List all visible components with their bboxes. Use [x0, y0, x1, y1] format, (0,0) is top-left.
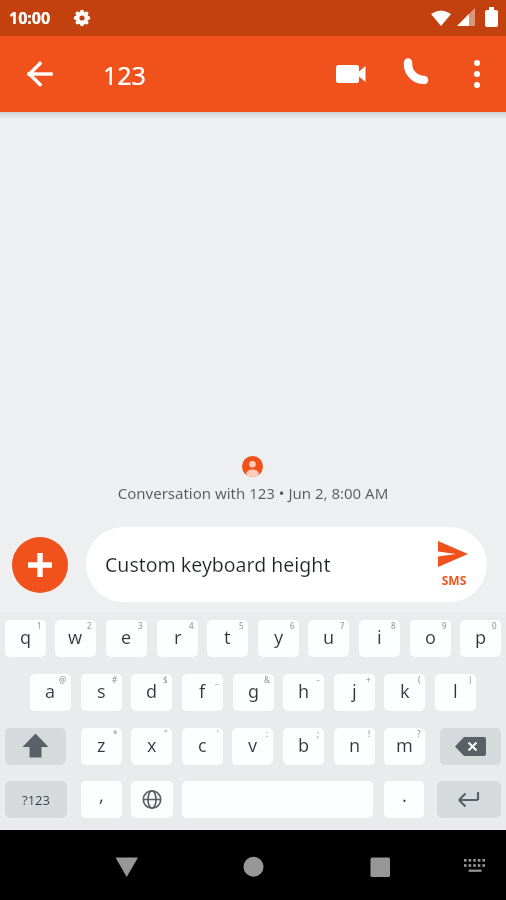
- button[interactable]: i: [359, 620, 400, 657]
- staticText: ): [469, 674, 472, 685]
- staticText: #: [112, 674, 118, 685]
- staticText: b: [298, 733, 310, 758]
- button[interactable]: w: [55, 620, 96, 657]
- button[interactable]: [5, 728, 66, 765]
- staticText: _: [215, 674, 219, 685]
- button[interactable]: [350, 835, 410, 895]
- staticText: h: [298, 679, 310, 704]
- staticText: f: [199, 679, 206, 704]
- staticText: *: [113, 728, 118, 739]
- staticText: k: [400, 679, 410, 704]
- button[interactable]: [455, 46, 505, 102]
- button[interactable]: p: [460, 620, 501, 657]
- button[interactable]: [437, 781, 501, 818]
- staticText: a: [45, 679, 56, 704]
- button[interactable]: ?123: [5, 781, 67, 818]
- button[interactable]: [96, 835, 156, 895]
- button[interactable]: d: [131, 674, 172, 711]
- button[interactable]: r: [157, 620, 198, 657]
- staticText: d: [146, 679, 158, 704]
- button[interactable]: [12, 537, 68, 593]
- button[interactable]: c: [182, 728, 223, 765]
- staticText: 5: [239, 620, 244, 631]
- staticText: 7: [340, 620, 345, 631]
- staticText: c: [198, 733, 207, 758]
- button[interactable]: b: [283, 728, 324, 765]
- button[interactable]: [0, 36, 80, 112]
- staticText: g: [248, 679, 260, 704]
- button[interactable]: [440, 728, 501, 765]
- button[interactable]: h: [283, 674, 324, 711]
- button[interactable]: v: [232, 728, 273, 765]
- button[interactable]: [325, 46, 381, 102]
- button[interactable]: q: [5, 620, 46, 657]
- button[interactable]: k: [384, 674, 425, 711]
- staticText: .: [402, 783, 407, 808]
- button[interactable]: [416, 532, 486, 597]
- staticText: l: [453, 679, 458, 704]
- button[interactable]: [395, 46, 451, 102]
- staticText: q: [20, 625, 32, 650]
- staticText: ,: [99, 783, 104, 808]
- staticText: ?123: [22, 791, 50, 809]
- button[interactable]: [131, 781, 173, 818]
- button[interactable]: s: [81, 674, 122, 711]
- button[interactable]: u: [308, 620, 349, 657]
- button[interactable]: [223, 835, 283, 895]
- button[interactable]: o: [410, 620, 451, 657]
- staticText: p: [475, 625, 487, 650]
- staticText: SMS: [424, 572, 484, 592]
- staticText: x: [147, 733, 157, 758]
- staticText: ;: [317, 728, 320, 739]
- button[interactable]: m: [384, 728, 425, 765]
- button[interactable]: t: [207, 620, 248, 657]
- button[interactable]: a: [30, 674, 71, 711]
- staticText: t: [224, 625, 231, 650]
- staticText: 8: [391, 620, 396, 631]
- staticText: ': [217, 728, 219, 739]
- staticText: v: [248, 733, 258, 758]
- button[interactable]: f: [182, 674, 223, 711]
- button[interactable]: .: [384, 781, 424, 818]
- button[interactable]: y: [258, 620, 299, 657]
- staticText: 4: [189, 620, 194, 631]
- staticText: s: [97, 679, 106, 704]
- button[interactable]: [448, 835, 503, 895]
- staticText: j: [352, 679, 357, 704]
- staticText: :: [266, 728, 269, 739]
- staticText: y: [274, 625, 284, 650]
- staticText: $: [163, 674, 168, 685]
- staticText: ": [164, 728, 168, 739]
- staticText: &: [264, 674, 270, 685]
- staticText: r: [174, 625, 182, 650]
- staticText: +: [366, 674, 371, 685]
- staticText: 1: [37, 620, 42, 631]
- staticText: u: [323, 625, 335, 650]
- staticText: Conversation with 123 • Jun 2, 8:00 AM: [0, 483, 506, 505]
- staticText: 6: [290, 620, 295, 631]
- staticText: 123: [103, 58, 146, 92]
- button[interactable]: g: [233, 674, 274, 711]
- button[interactable]: e: [106, 620, 147, 657]
- staticText: 3: [138, 620, 143, 631]
- button[interactable]: ,: [81, 781, 122, 818]
- button[interactable]: l: [435, 674, 476, 711]
- staticText: i: [377, 625, 382, 650]
- staticText: o: [425, 625, 436, 650]
- staticText: z: [97, 733, 106, 758]
- button[interactable]: j: [334, 674, 375, 711]
- staticText: (: [418, 674, 421, 685]
- staticText: n: [349, 733, 361, 758]
- button[interactable]: Custom keyboard height: [86, 527, 487, 602]
- staticText: e: [121, 625, 132, 650]
- staticText: -: [317, 674, 320, 685]
- button[interactable]: z: [81, 728, 122, 765]
- button[interactable]: x: [131, 728, 172, 765]
- staticText: 9: [442, 620, 447, 631]
- staticText: !: [368, 728, 371, 739]
- staticText: 0: [492, 620, 497, 631]
- button[interactable]: n: [334, 728, 375, 765]
- staticText: @: [59, 674, 67, 685]
- staticText: w: [68, 625, 83, 650]
